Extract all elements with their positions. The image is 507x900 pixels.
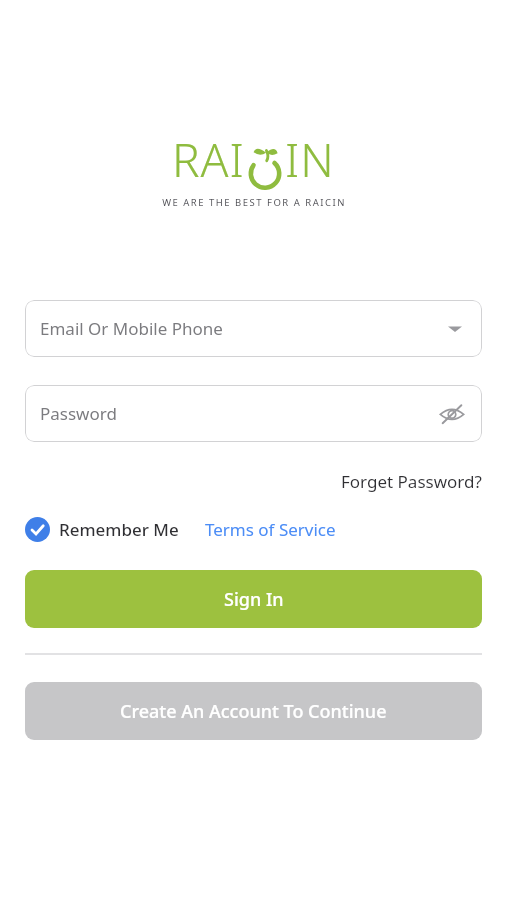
staticText: Create An Account To Continue: [120, 699, 387, 724]
button[interactable]: Terms of Service: [205, 512, 336, 546]
button[interactable]: Sign In: [25, 570, 482, 628]
staticText: WE ARE THE BEST FOR A RAICIN: [162, 196, 346, 209]
button[interactable]: Email Or Mobile Phone: [25, 300, 482, 357]
staticText: RAI: [172, 128, 245, 191]
staticText: Sign In: [224, 587, 284, 612]
staticText: IN: [285, 128, 335, 191]
button[interactable]: Password: [25, 385, 482, 442]
staticText: Remember Me: [59, 518, 179, 541]
button[interactable]: Create An Account To Continue: [25, 682, 482, 740]
staticText: Password: [40, 402, 117, 425]
button[interactable]: Show password: [436, 398, 468, 430]
button[interactable]: Remember Me: [25, 512, 179, 546]
staticText: Terms of Service: [205, 518, 336, 541]
staticText: Email Or Mobile Phone: [40, 317, 223, 340]
button[interactable]: Forget Password?: [300, 466, 482, 496]
staticText: Forget Password?: [341, 470, 482, 493]
other: Open list: [448, 324, 462, 334]
